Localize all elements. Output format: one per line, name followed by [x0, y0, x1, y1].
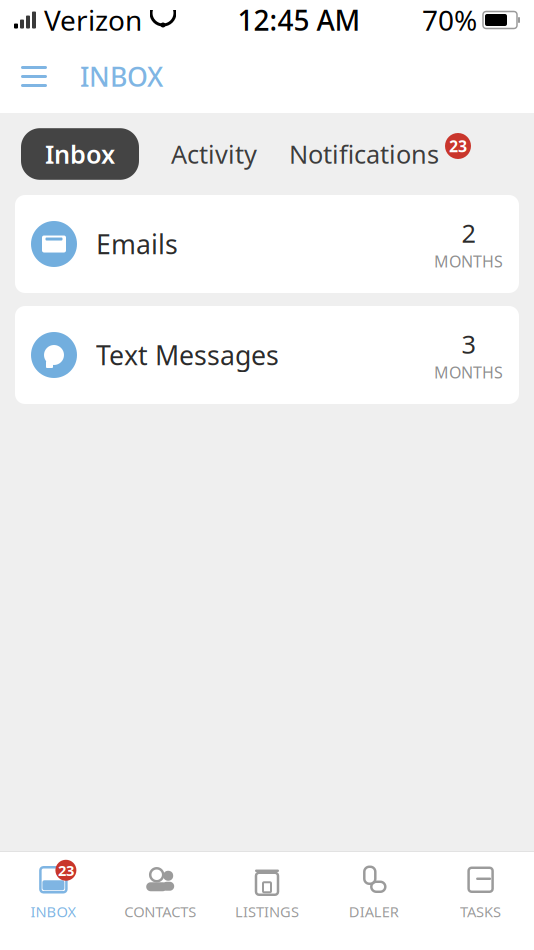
staticText: DIALER: [349, 902, 399, 921]
staticText: Text Messages: [96, 337, 279, 373]
staticText: TASKS: [460, 902, 501, 921]
staticText: INBOX: [30, 902, 76, 921]
staticText: 3: [461, 327, 475, 361]
button[interactable]: DIALER: [320, 862, 427, 924]
button[interactable]: Activity: [153, 128, 275, 180]
button[interactable]: 23: [0, 862, 107, 924]
staticText: CONTACTS: [124, 902, 196, 921]
button[interactable]: CONTACTS: [107, 862, 214, 924]
button[interactable]: LISTINGS: [214, 862, 320, 924]
staticText: LISTINGS: [235, 902, 299, 921]
staticText: 12:45 AM: [237, 1, 360, 39]
staticText: Verizon: [44, 1, 142, 39]
button[interactable]: Inbox: [21, 128, 139, 180]
button[interactable]: Emails: [15, 195, 519, 293]
staticText: Activity: [171, 137, 257, 171]
button[interactable]: Text Messages: [15, 306, 519, 404]
staticText: 70%: [422, 1, 477, 39]
button[interactable]: TASKS: [427, 862, 534, 924]
staticText: 23: [58, 860, 74, 880]
button[interactable]: Notifications: [289, 124, 471, 184]
staticText: Emails: [96, 226, 178, 262]
button[interactable]: Menu: [8, 51, 60, 101]
staticText: 2: [461, 216, 475, 250]
staticText: Notifications: [289, 137, 439, 171]
staticText: 23: [449, 135, 467, 157]
staticText: Inbox: [45, 137, 115, 171]
staticText: MONTHS: [434, 362, 503, 383]
staticText: INBOX: [80, 59, 163, 94]
staticText: MONTHS: [434, 251, 503, 272]
